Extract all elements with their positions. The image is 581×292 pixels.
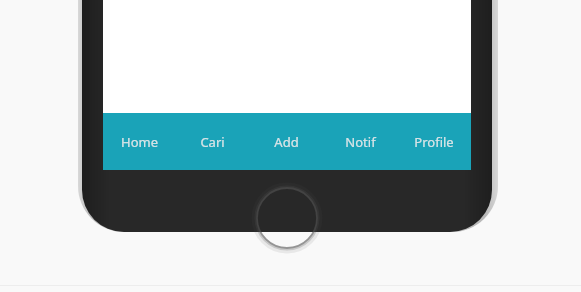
button[interactable]: Notif bbox=[323, 113, 397, 170]
button[interactable]: Add bbox=[249, 113, 323, 170]
staticText: Profile bbox=[414, 133, 454, 151]
staticText: Home bbox=[121, 133, 158, 151]
staticText: Notif bbox=[345, 133, 376, 151]
button[interactable]: Profile bbox=[397, 113, 471, 170]
staticText: Cari bbox=[200, 133, 225, 151]
staticText: Add bbox=[274, 133, 299, 151]
button[interactable] bbox=[254, 185, 320, 251]
button[interactable]: Home bbox=[103, 113, 176, 170]
button[interactable]: Cari bbox=[176, 113, 249, 170]
